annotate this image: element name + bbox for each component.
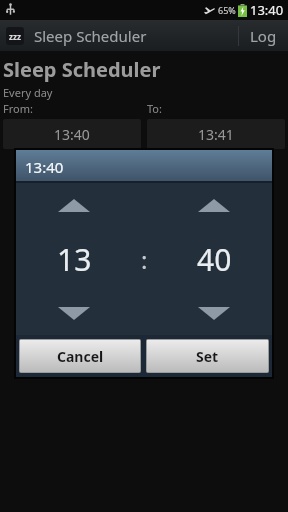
staticText: 65% — [218, 4, 236, 16]
staticText: zzz — [9, 31, 21, 42]
button[interactable]: Increment — [56, 197, 92, 213]
button[interactable]: Set — [147, 340, 268, 372]
staticText: 40 — [197, 239, 232, 280]
button[interactable]: Decrement — [196, 305, 232, 321]
staticText: 13:41 — [198, 125, 234, 144]
staticText: Sleep Scheduler — [3, 56, 161, 83]
button[interactable]: 13:41 — [147, 119, 285, 149]
staticText: From: — [3, 101, 33, 116]
staticText: : — [141, 243, 148, 276]
button[interactable]: Increment — [196, 197, 232, 213]
staticText: 13:40 — [54, 125, 90, 144]
staticText: Log — [250, 26, 277, 46]
staticText: Every day — [3, 85, 53, 100]
staticText: Sleep Scheduler — [34, 26, 147, 46]
staticText: Set — [196, 347, 219, 366]
button[interactable]: Decrement — [56, 305, 92, 321]
staticText: 13:40 — [250, 1, 284, 19]
button[interactable]: 13:40 — [3, 119, 141, 149]
button[interactable]: App icon — [6, 27, 24, 45]
button[interactable]: Cancel — [20, 340, 140, 372]
staticText: 13 — [57, 239, 92, 280]
staticText: 13:40 — [25, 157, 64, 177]
staticText: Cancel — [57, 347, 104, 366]
staticText: To: — [147, 101, 162, 116]
button[interactable]: Log — [239, 20, 288, 52]
